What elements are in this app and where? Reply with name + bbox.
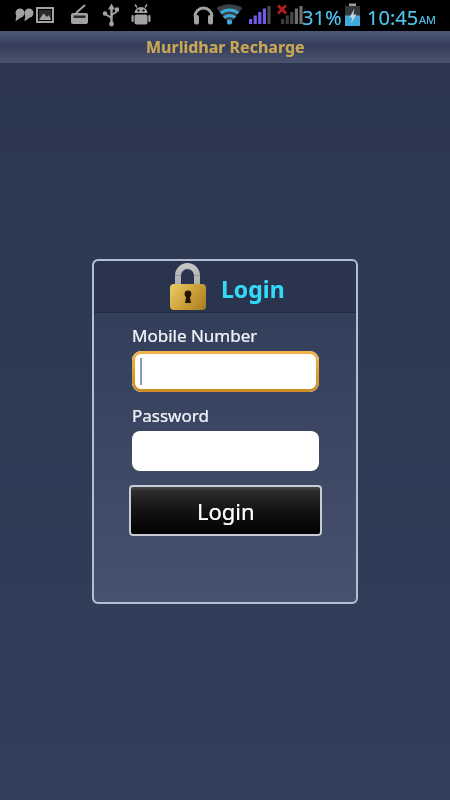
button[interactable] bbox=[132, 431, 319, 471]
button[interactable] bbox=[132, 351, 319, 392]
staticText: Password bbox=[132, 404, 209, 427]
staticText: Login bbox=[197, 496, 255, 526]
button[interactable]: Login bbox=[129, 485, 322, 536]
staticText: 31% bbox=[302, 4, 342, 31]
staticText: AM bbox=[419, 12, 437, 27]
staticText: Murlidhar Recharge bbox=[146, 36, 305, 58]
staticText: Login bbox=[221, 273, 285, 304]
staticText: Mobile Number bbox=[132, 324, 258, 347]
staticText: 10:45 bbox=[367, 4, 419, 31]
